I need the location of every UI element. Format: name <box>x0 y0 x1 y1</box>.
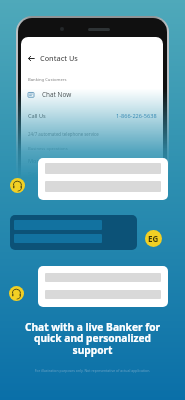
staticText: Chat Now <box>42 90 72 99</box>
staticText: Mon-Fri 8am-8pm ET <box>28 157 83 165</box>
button[interactable]: EG <box>145 230 162 247</box>
button[interactable]: Support agent <box>9 286 24 301</box>
staticText: Chat with a live Banker for quick and pe… <box>21 320 164 357</box>
other: Back <box>28 55 35 62</box>
staticText: Contact Us <box>40 53 78 63</box>
staticText: Banking Customers <box>28 77 67 83</box>
button[interactable]: Call Us <box>28 112 157 120</box>
staticText: EG <box>148 233 159 244</box>
staticText: For illustration purposes only. Not repr… <box>0 368 185 373</box>
button[interactable] <box>38 158 168 200</box>
staticText: 24/7 automated telephone service <box>28 131 99 137</box>
button[interactable] <box>38 266 168 307</box>
staticText: Business operations <box>28 146 68 152</box>
button[interactable]: Support agent <box>10 178 25 193</box>
staticText: Call Us <box>28 112 46 120</box>
staticText: Sat-Sun 9am-6pm ET <box>28 170 83 178</box>
staticText: 1-866-226-5638 <box>116 112 157 120</box>
button[interactable]: Chat Now <box>28 90 157 99</box>
button[interactable]: Back <box>28 53 78 63</box>
button[interactable] <box>10 215 137 250</box>
